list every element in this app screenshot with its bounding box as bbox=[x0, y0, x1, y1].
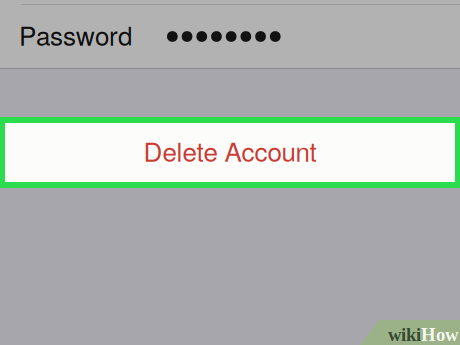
staticText: wiki bbox=[388, 324, 421, 345]
staticText: How bbox=[421, 324, 458, 345]
button[interactable]: Password bbox=[0, 5, 460, 68]
button[interactable]: Delete Account bbox=[0, 117, 460, 188]
staticText: Delete Account bbox=[143, 132, 316, 169]
staticText: Password bbox=[19, 16, 132, 53]
